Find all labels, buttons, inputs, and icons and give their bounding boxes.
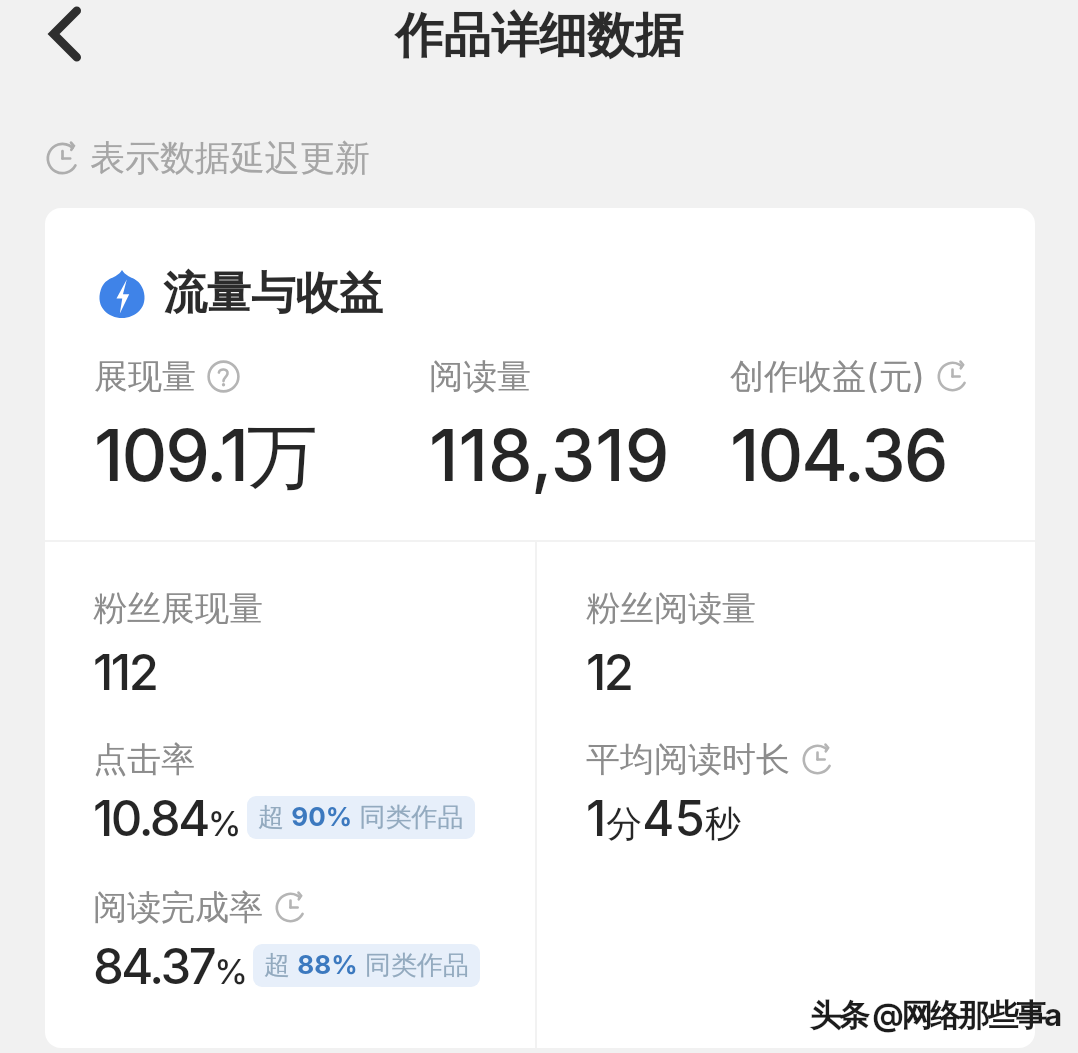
staticText: 表示数据延迟更新 <box>90 136 370 180</box>
button[interactable]: 点击率 <box>93 738 475 848</box>
staticText: 超 88% 同类作品 <box>264 949 469 982</box>
staticText: 平均阅读时长 <box>586 738 790 781</box>
button[interactable]: Data updates with a delay <box>274 891 307 924</box>
staticText: 104.36 <box>730 412 947 498</box>
button[interactable]: 展现量 <box>94 355 316 502</box>
staticText: 10.84% <box>93 789 240 848</box>
staticText: 流量与收益 <box>163 266 383 321</box>
staticText: 头条 @网络那些事a <box>810 996 1060 1035</box>
staticText: 创作收益(元) <box>730 355 925 398</box>
staticText: 84.37% <box>93 937 246 996</box>
button[interactable]: 阅读完成率 <box>93 886 480 996</box>
button[interactable]: 表示数据延迟更新 <box>45 136 370 180</box>
staticText: 点击率 <box>93 738 195 781</box>
staticText: 展现量 <box>94 355 196 398</box>
button[interactable]: Back <box>30 0 98 68</box>
staticText: 12 <box>586 643 632 702</box>
staticText: 粉丝阅读量 <box>586 587 756 630</box>
staticText: 阅读完成率 <box>93 886 263 929</box>
staticText: 超 90% 同类作品 <box>258 801 464 834</box>
button[interactable]: 创作收益(元) <box>730 355 969 498</box>
button[interactable]: Data updates with a delay <box>936 360 969 393</box>
staticText: 109.1万 <box>94 412 316 502</box>
staticText: 作品详细数据 <box>395 6 683 66</box>
button[interactable]: 粉丝展现量 <box>93 587 263 702</box>
button[interactable]: Data updates with a delay <box>801 743 834 776</box>
staticText: 阅读量 <box>429 355 531 398</box>
staticText: 118,319 <box>429 412 670 498</box>
button[interactable]: What is this metric? <box>207 360 240 393</box>
button[interactable]: 流量与收益 <box>98 266 383 321</box>
button[interactable]: 阅读量 <box>429 355 670 498</box>
staticText: 粉丝展现量 <box>93 587 263 630</box>
staticText: 1分45秒 <box>586 789 741 848</box>
button[interactable]: 平均阅读时长 <box>586 738 834 848</box>
button[interactable]: 粉丝阅读量 <box>586 587 756 702</box>
staticText: 112 <box>93 643 157 702</box>
